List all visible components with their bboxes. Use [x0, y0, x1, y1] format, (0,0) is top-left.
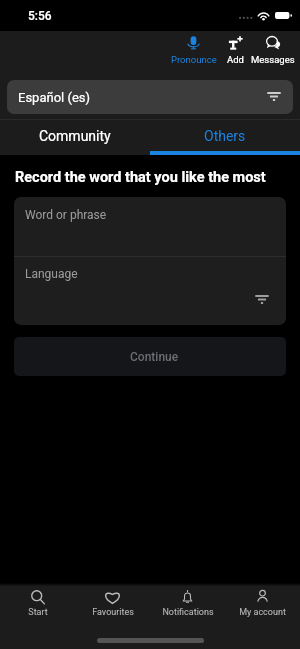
staticText: 5:56 [28, 9, 52, 23]
staticText: Record the word that you like the most [15, 169, 266, 186]
button[interactable]: Español (es) [7, 80, 293, 114]
button[interactable]: Messages [249, 31, 297, 75]
button[interactable]: Continue [14, 337, 286, 376]
staticText: Notifications [162, 607, 214, 618]
other: Filter [267, 92, 281, 101]
button[interactable]: Word or phrase [14, 197, 286, 256]
staticText: Word or phrase [25, 208, 107, 222]
staticText: Español (es) [18, 90, 91, 105]
button[interactable]: Favourites [75, 586, 150, 620]
staticText: Add [227, 54, 244, 65]
staticText: Continue [130, 350, 179, 364]
staticText: Favourites [92, 607, 134, 618]
button[interactable]: Pronounce [166, 31, 221, 75]
staticText: Community [39, 128, 111, 144]
staticText: Language [25, 267, 78, 281]
staticText: Start [28, 607, 48, 618]
button[interactable]: Community [0, 120, 150, 151]
button[interactable]: Notifications [150, 586, 225, 620]
staticText: Others [204, 128, 246, 144]
button[interactable]: Start [0, 586, 75, 620]
button[interactable]: Language [14, 257, 286, 325]
staticText: My account [239, 607, 286, 618]
button[interactable]: Others [150, 120, 300, 151]
staticText: Pronounce [171, 54, 217, 65]
button[interactable]: My account [225, 586, 300, 620]
button[interactable]: Add [221, 31, 249, 75]
other: Filter languages [255, 295, 269, 304]
staticText: Messages [251, 54, 295, 65]
